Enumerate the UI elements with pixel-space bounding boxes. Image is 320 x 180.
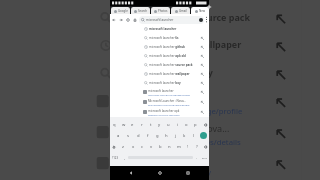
button[interactable]: Insert suggestion — [199, 80, 205, 86]
button[interactable]: Insert suggestion — [199, 35, 205, 41]
staticText: c — [141, 144, 144, 150]
button[interactable]: s — [123, 130, 133, 141]
button[interactable]: ENG — [200, 152, 209, 163]
button[interactable]: r — [137, 119, 146, 130]
staticText: microsoft launcher boy — [115, 67, 270, 79]
button[interactable]: k — [180, 130, 189, 141]
button[interactable]: Insert suggestion — [199, 71, 205, 77]
button[interactable]: Insert suggestion — [270, 123, 289, 141]
button[interactable]: Search — [131, 7, 150, 14]
button[interactable]: Refresh — [124, 14, 131, 25]
button[interactable]: x — [128, 141, 138, 152]
button[interactable]: Back — [123, 166, 139, 180]
button[interactable]: ! — [183, 141, 192, 152]
button[interactable]: w — [119, 119, 128, 130]
staticText: microsoft launcher apk — [148, 109, 180, 113]
button[interactable]: n — [165, 141, 174, 152]
button[interactable]: microsoft launcher source pack — [0, 2, 301, 30]
button[interactable]: Photos — [151, 7, 170, 14]
staticText: microsoft launcher github — [149, 45, 199, 49]
button[interactable]: l — [189, 130, 198, 141]
button[interactable]: microsoft launcher boy — [0, 58, 301, 86]
button[interactable]: a — [113, 130, 123, 141]
button[interactable]: microsoft launcher — [139, 16, 204, 24]
button[interactable]: q — [110, 119, 119, 130]
staticText: o — [185, 122, 188, 128]
button[interactable]: Back — [110, 14, 117, 25]
button[interactable]: z — [118, 141, 128, 152]
button[interactable]: Insert suggestion — [199, 109, 205, 115]
button[interactable]: Insert suggestion — [199, 62, 205, 68]
button[interactable]: b — [156, 141, 165, 152]
button[interactable]: Insert suggestion — [270, 92, 289, 110]
button[interactable]: microsoft launcher wallpaper — [0, 30, 301, 58]
button[interactable]: microsoft launcher — [0, 86, 301, 117]
staticText: l — [193, 133, 195, 139]
button[interactable]: microsoft launcher apk — [110, 107, 209, 117]
button[interactable]: microsoft launcher wallpaper — [110, 69, 209, 78]
button[interactable]: v — [147, 141, 156, 152]
button[interactable]: i — [173, 119, 182, 130]
button[interactable]: Insert suggestion — [199, 89, 205, 95]
button[interactable]: microsoft launcher boy — [110, 78, 209, 87]
staticText: microsoft launcher 6s — [149, 36, 199, 40]
button[interactable]: . — [193, 152, 200, 163]
button[interactable]: o — [182, 119, 191, 130]
button[interactable]: Backspace — [200, 119, 209, 130]
button[interactable]: Microsoft Launcher : Nova... — [0, 117, 301, 148]
button[interactable]: Home — [131, 14, 138, 25]
button[interactable]: Insert suggestion — [270, 154, 289, 172]
button[interactable]: microsoft launcher — [110, 24, 209, 33]
button[interactable]: c — [138, 141, 147, 152]
staticText: i — [177, 122, 179, 128]
button[interactable]: Insert suggestion — [270, 8, 289, 27]
button[interactable]: microsoft launcher — [110, 87, 209, 97]
button[interactable]: ? — [192, 141, 201, 152]
button[interactable]: microsoft launcher github — [110, 42, 209, 51]
button[interactable]: h — [162, 130, 171, 141]
staticText: play.google.com/store/apps/details — [148, 103, 190, 106]
button[interactable]: u — [164, 119, 173, 130]
button[interactable]: Google — [111, 7, 130, 14]
staticText: apkpure.com/ms-launcher/ — [148, 113, 180, 116]
staticText: microsoft launcher — [148, 89, 174, 93]
button[interactable]: t — [146, 119, 155, 130]
button[interactable]: Insert suggestion — [199, 53, 205, 59]
button[interactable]: e — [128, 119, 137, 130]
button[interactable]: microsoft launcher 6s — [110, 33, 209, 42]
button[interactable]: Home — [152, 166, 168, 180]
button[interactable]: Backspace — [201, 141, 209, 152]
button[interactable]: m — [174, 141, 183, 152]
button[interactable]: Microsoft Launcher : Nova... — [110, 97, 209, 107]
button[interactable]: Gmail — [171, 7, 190, 14]
button[interactable]: g — [153, 130, 162, 141]
button[interactable]: microsoft launcher apk old — [110, 51, 209, 60]
staticText: h — [165, 133, 168, 139]
staticText: s — [127, 133, 130, 139]
button[interactable]: Search — [198, 130, 209, 141]
button[interactable]: microsoft launcher apk — [0, 148, 301, 179]
button[interactable]: Insert suggestion — [199, 44, 205, 50]
button[interactable]: ?123 — [110, 152, 121, 163]
button[interactable]: Insert suggestion — [270, 36, 289, 55]
button[interactable]: Insert suggestion — [199, 99, 205, 105]
button[interactable]: Insert suggestion — [270, 64, 289, 83]
button[interactable]: Forward — [117, 14, 124, 25]
button[interactable]: Shift — [110, 141, 118, 152]
staticText: z — [122, 144, 124, 150]
button[interactable]: , — [121, 152, 128, 163]
staticText: microsoft.com/en-us/garage/profile — [112, 104, 245, 114]
button[interactable]: p — [191, 119, 200, 130]
button[interactable]: y — [155, 119, 164, 130]
button[interactable]: More options — [204, 14, 209, 25]
button[interactable]: microsoft launcher apk old — [0, 0, 301, 2]
button[interactable]: New — [191, 7, 209, 14]
button[interactable]: Recents — [180, 166, 196, 180]
button[interactable]: j — [171, 130, 180, 141]
button[interactable]: d — [133, 130, 143, 141]
staticText: w — [122, 122, 126, 128]
button[interactable]: f — [143, 130, 153, 141]
button[interactable]: microsoft launcher source pack — [110, 60, 209, 69]
staticText: apkpure.com/ms-launcher/ — [112, 166, 211, 176]
